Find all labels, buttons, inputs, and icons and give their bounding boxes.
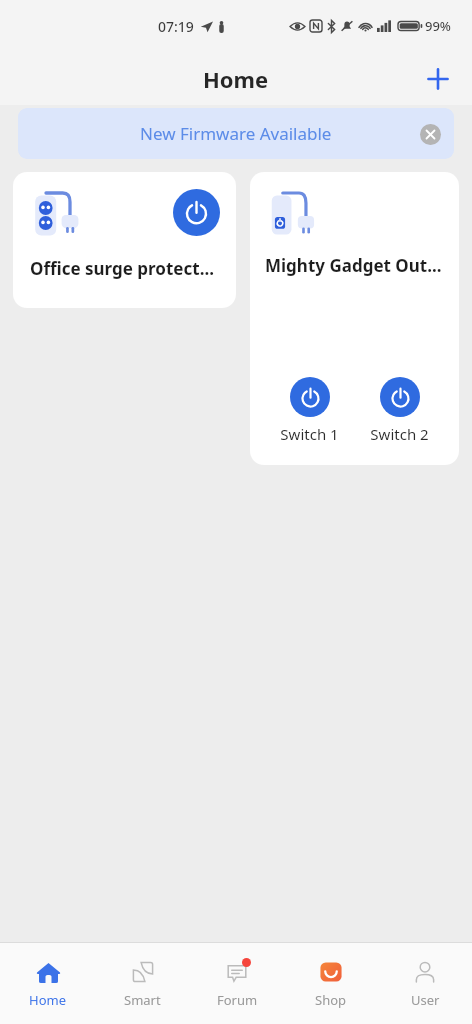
- button[interactable]: New Firmware Available: [18, 108, 454, 159]
- staticText: 99%: [425, 17, 451, 35]
- staticText: Shop: [315, 991, 347, 1009]
- button[interactable]: User: [378, 950, 472, 1017]
- button[interactable]: Add device: [418, 59, 458, 99]
- button[interactable]: Toggle power: [13, 172, 236, 308]
- button[interactable]: Forum: [190, 950, 284, 1017]
- staticText: Forum: [217, 991, 258, 1009]
- button[interactable]: Shop: [284, 950, 378, 1017]
- staticText: Switch 2: [370, 424, 429, 444]
- button[interactable]: Switch 2: [370, 377, 429, 444]
- button[interactable]: Toggle power: [173, 189, 220, 236]
- staticText: Home: [29, 991, 66, 1009]
- staticText: 07:19: [158, 17, 194, 36]
- staticText: User: [411, 991, 440, 1009]
- button[interactable]: Smart: [95, 950, 190, 1017]
- button[interactable]: Switch 1: [280, 377, 339, 444]
- staticText: Switch 1: [280, 424, 339, 444]
- staticText: Home: [203, 64, 269, 94]
- button[interactable]: Mighty Gadget Out...: [250, 172, 459, 465]
- staticText: Mighty Gadget Out...: [265, 254, 442, 277]
- staticText: Office surge protect...: [30, 257, 214, 280]
- staticText: Smart: [124, 991, 161, 1009]
- button[interactable]: Dismiss: [414, 118, 446, 150]
- button[interactable]: Home: [0, 950, 95, 1017]
- staticText: New Firmware Available: [140, 122, 332, 145]
